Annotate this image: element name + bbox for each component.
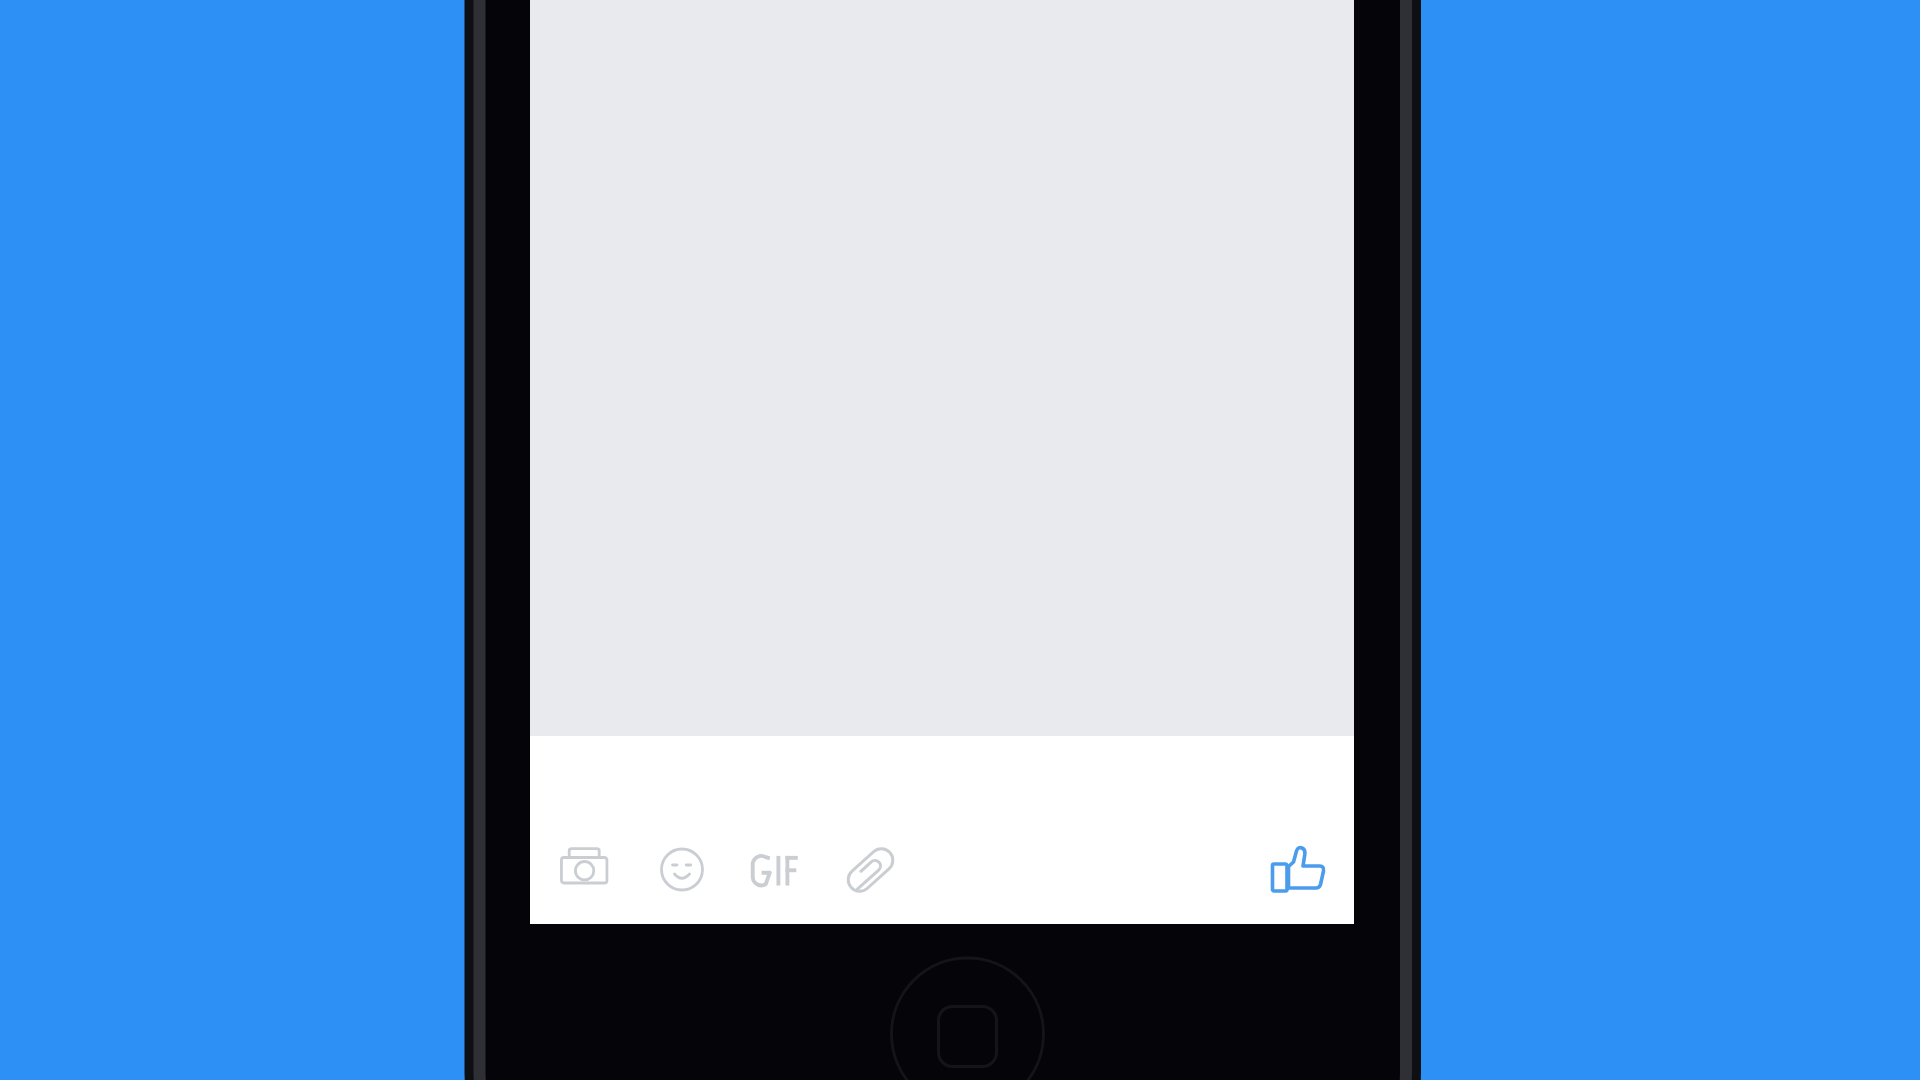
button[interactable]: Type a message bbox=[530, 736, 1354, 854]
button[interactable]: Stickers bbox=[640, 828, 724, 912]
button[interactable]: Attach a file bbox=[829, 828, 913, 912]
button[interactable]: Send a like bbox=[1252, 824, 1344, 916]
button[interactable]: Camera bbox=[542, 828, 626, 912]
button[interactable]: Send a GIF bbox=[733, 828, 817, 912]
